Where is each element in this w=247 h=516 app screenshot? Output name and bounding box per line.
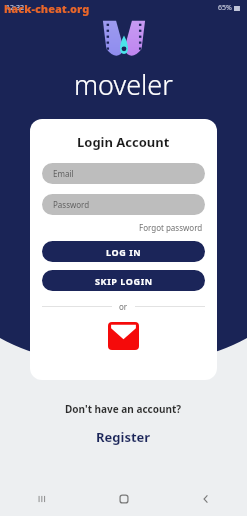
staticText: LOG IN [106,246,142,258]
staticText: Password [53,199,90,210]
staticText: Register [96,428,151,446]
button[interactable]: Email [42,163,205,184]
staticText: moveler [74,66,173,103]
button[interactable]: SKIP LOGIN [42,270,205,291]
button[interactable]: LOG IN [42,241,205,262]
staticText: or [119,301,128,312]
staticText: Email [53,168,74,179]
staticText: 12:32 [6,3,24,13]
button[interactable]: Forgot password [137,220,205,235]
button[interactable]: Recent apps [0,482,83,516]
button[interactable]: Sign in with email [108,322,139,350]
staticText: Don't have an account? [65,402,182,416]
other: Moveler logo [102,18,146,62]
button[interactable]: Back [165,482,247,516]
staticText: 65% [218,3,232,13]
button[interactable]: Home [83,482,165,516]
staticText: Forgot password [139,222,203,233]
button[interactable]: Password [42,194,205,215]
staticText: Login Account [77,133,170,151]
staticText: SKIP LOGIN [95,275,153,287]
staticText: hack-cheat.org [4,1,90,16]
button[interactable]: Register [90,426,157,448]
